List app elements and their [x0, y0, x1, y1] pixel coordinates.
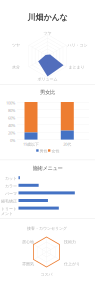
staticText: 水分 — [12, 65, 20, 69]
staticText: 80% — [8, 108, 15, 113]
staticText: 女性 — [51, 149, 59, 153]
staticText: 技術力 — [64, 239, 76, 244]
staticText: まとまり — [68, 65, 84, 69]
staticText: 雰囲気 — [22, 261, 34, 266]
staticText: 20% — [8, 130, 15, 136]
staticText: トリートメント — [1, 206, 17, 216]
staticText: コスパ — [40, 272, 52, 277]
staticText: 0% — [10, 138, 15, 143]
staticText: 接客・カウンセリング — [27, 226, 67, 231]
staticText: 40% — [8, 123, 15, 128]
staticText: パーマ — [5, 191, 17, 196]
staticText: ボリューム — [37, 77, 57, 81]
staticText: カラー — [5, 184, 17, 188]
staticText: ツヤ — [43, 31, 51, 35]
staticText: 男女比 — [40, 89, 55, 96]
staticText: カット — [5, 176, 17, 181]
staticText: 居心地 — [22, 239, 34, 244]
staticText: ハリ・コシ — [67, 43, 87, 47]
staticText: 60% — [8, 115, 15, 120]
staticText: 施術メニュー — [32, 165, 62, 172]
staticText: 縮毛矯正 — [1, 199, 17, 204]
staticText: 仕上がり — [64, 261, 80, 266]
staticText: ツヤ — [12, 43, 20, 47]
staticText: 100% — [6, 100, 15, 105]
staticText: 19歳以下 — [23, 141, 39, 147]
staticText: 男性 — [40, 149, 48, 153]
staticText: 20代 — [63, 141, 71, 147]
staticText: 川畑かんな — [27, 12, 67, 22]
